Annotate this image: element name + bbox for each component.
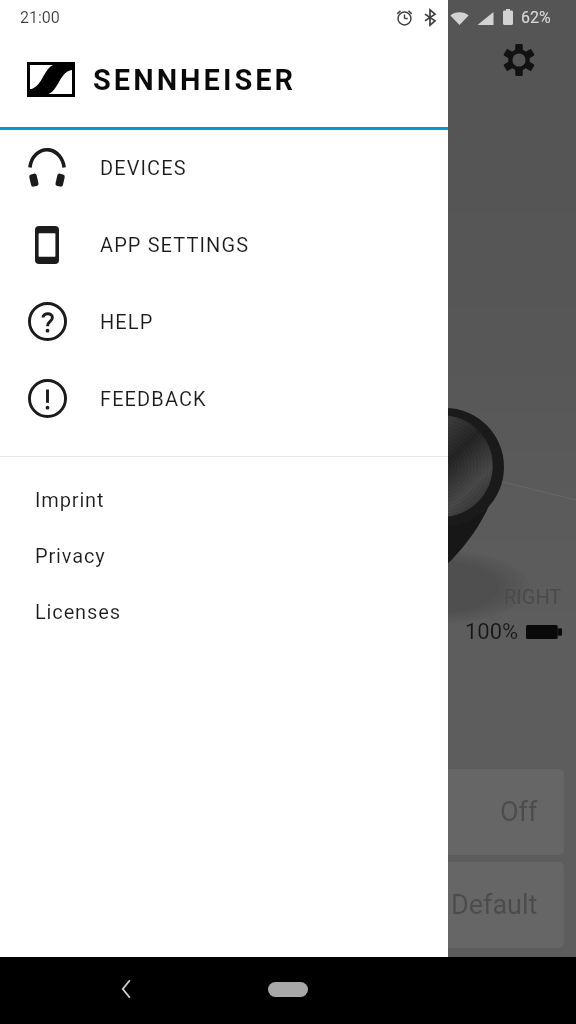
staticText: Privacy xyxy=(35,544,106,567)
button[interactable]: Home xyxy=(268,982,308,997)
staticText: APP SETTINGS xyxy=(100,233,250,256)
staticText: 21:00 xyxy=(20,8,60,27)
button[interactable]: Default xyxy=(12,862,564,948)
button[interactable]: Settings xyxy=(498,39,540,81)
staticText: RIGHT xyxy=(504,585,562,608)
staticText: 62% xyxy=(521,8,551,27)
staticText: Licenses xyxy=(35,600,121,623)
staticText: Off xyxy=(500,796,538,828)
button[interactable]: Off xyxy=(12,769,564,855)
staticText: DEVICES xyxy=(100,156,187,179)
button[interactable]: Back xyxy=(106,969,146,1009)
staticText: SENNHEISER xyxy=(93,63,297,97)
button[interactable]: Imprint xyxy=(0,471,448,527)
staticText: FEEDBACK xyxy=(100,387,207,410)
button[interactable]: Privacy xyxy=(0,527,448,583)
staticText: Default xyxy=(451,889,538,921)
staticText: HELP xyxy=(100,310,154,333)
staticText: 100% xyxy=(465,619,519,645)
button[interactable]: APP SETTINGS xyxy=(0,206,448,283)
staticText: Imprint xyxy=(35,488,105,511)
button[interactable]: Licenses xyxy=(0,583,448,639)
button[interactable]: HELP xyxy=(0,283,448,360)
button[interactable]: FEEDBACK xyxy=(0,360,448,437)
button[interactable]: DEVICES xyxy=(0,129,448,206)
